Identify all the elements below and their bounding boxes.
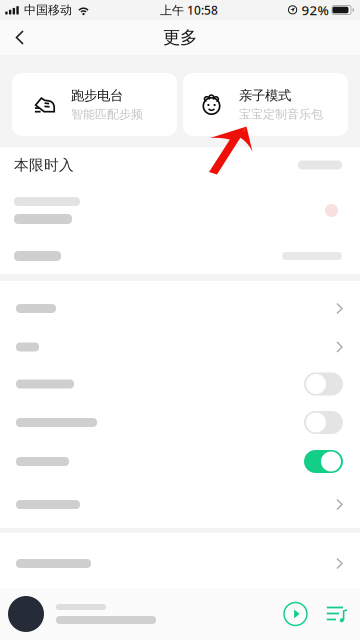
staticText: 跑步电台 (71, 87, 123, 104)
button[interactable] (0, 403, 360, 442)
button[interactable] (0, 481, 360, 528)
staticText: 更多 (163, 27, 197, 48)
button[interactable] (0, 281, 360, 327)
button[interactable] (0, 533, 360, 594)
staticText: 上午 10:58 (160, 2, 218, 18)
staticText: 92% (301, 1, 328, 19)
button[interactable] (0, 327, 360, 365)
staticText: 中国移动 (24, 3, 72, 17)
button[interactable] (0, 365, 360, 403)
staticText: 智能匹配步频 (71, 107, 143, 121)
staticText: 本限时入 (14, 156, 74, 174)
button[interactable]: 返回 (0, 20, 40, 54)
button[interactable]: 亲子模式 (183, 73, 348, 136)
button[interactable]: 播放列表 (308, 604, 348, 623)
staticText: 亲子模式 (239, 87, 291, 104)
button[interactable]: 跑步电台 (12, 73, 177, 136)
staticText: 宝宝定制音乐包 (239, 107, 323, 121)
button[interactable]: 播放 (283, 601, 308, 626)
button[interactable] (0, 442, 360, 481)
